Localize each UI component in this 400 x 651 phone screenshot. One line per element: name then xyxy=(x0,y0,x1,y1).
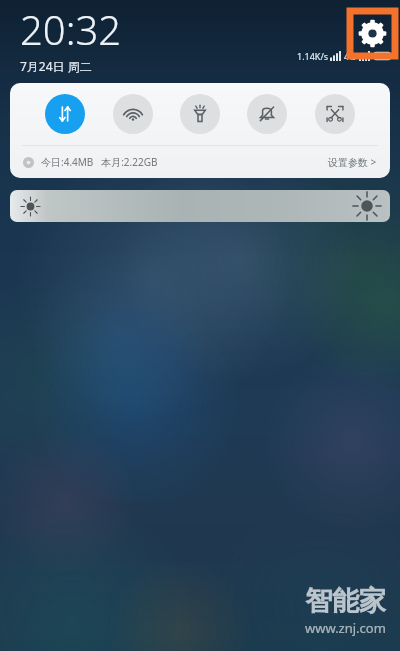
staticText: 1.14K/s xyxy=(297,50,329,62)
button[interactable]: Brightness xyxy=(10,190,390,222)
button[interactable]: Silent xyxy=(247,94,287,134)
button[interactable]: Wi-Fi xyxy=(113,94,153,134)
staticText: 20:32 xyxy=(20,2,122,56)
button[interactable]: Settings xyxy=(350,11,395,56)
staticText: www.znj.com xyxy=(305,619,386,637)
button[interactable]: Screenshot xyxy=(315,94,355,134)
button[interactable]: Flashlight xyxy=(180,94,220,134)
staticText: 智能家 xyxy=(305,584,386,618)
staticText: 4G xyxy=(344,50,356,62)
staticText: 7月24日 周二 xyxy=(20,58,92,74)
staticText: 今日:4.4MB 本月:2.22GB xyxy=(41,155,158,169)
button[interactable]: 设置参数 > xyxy=(328,155,377,169)
staticText: 设置参数 > xyxy=(328,155,377,169)
button[interactable]: Mobile data xyxy=(45,94,85,134)
